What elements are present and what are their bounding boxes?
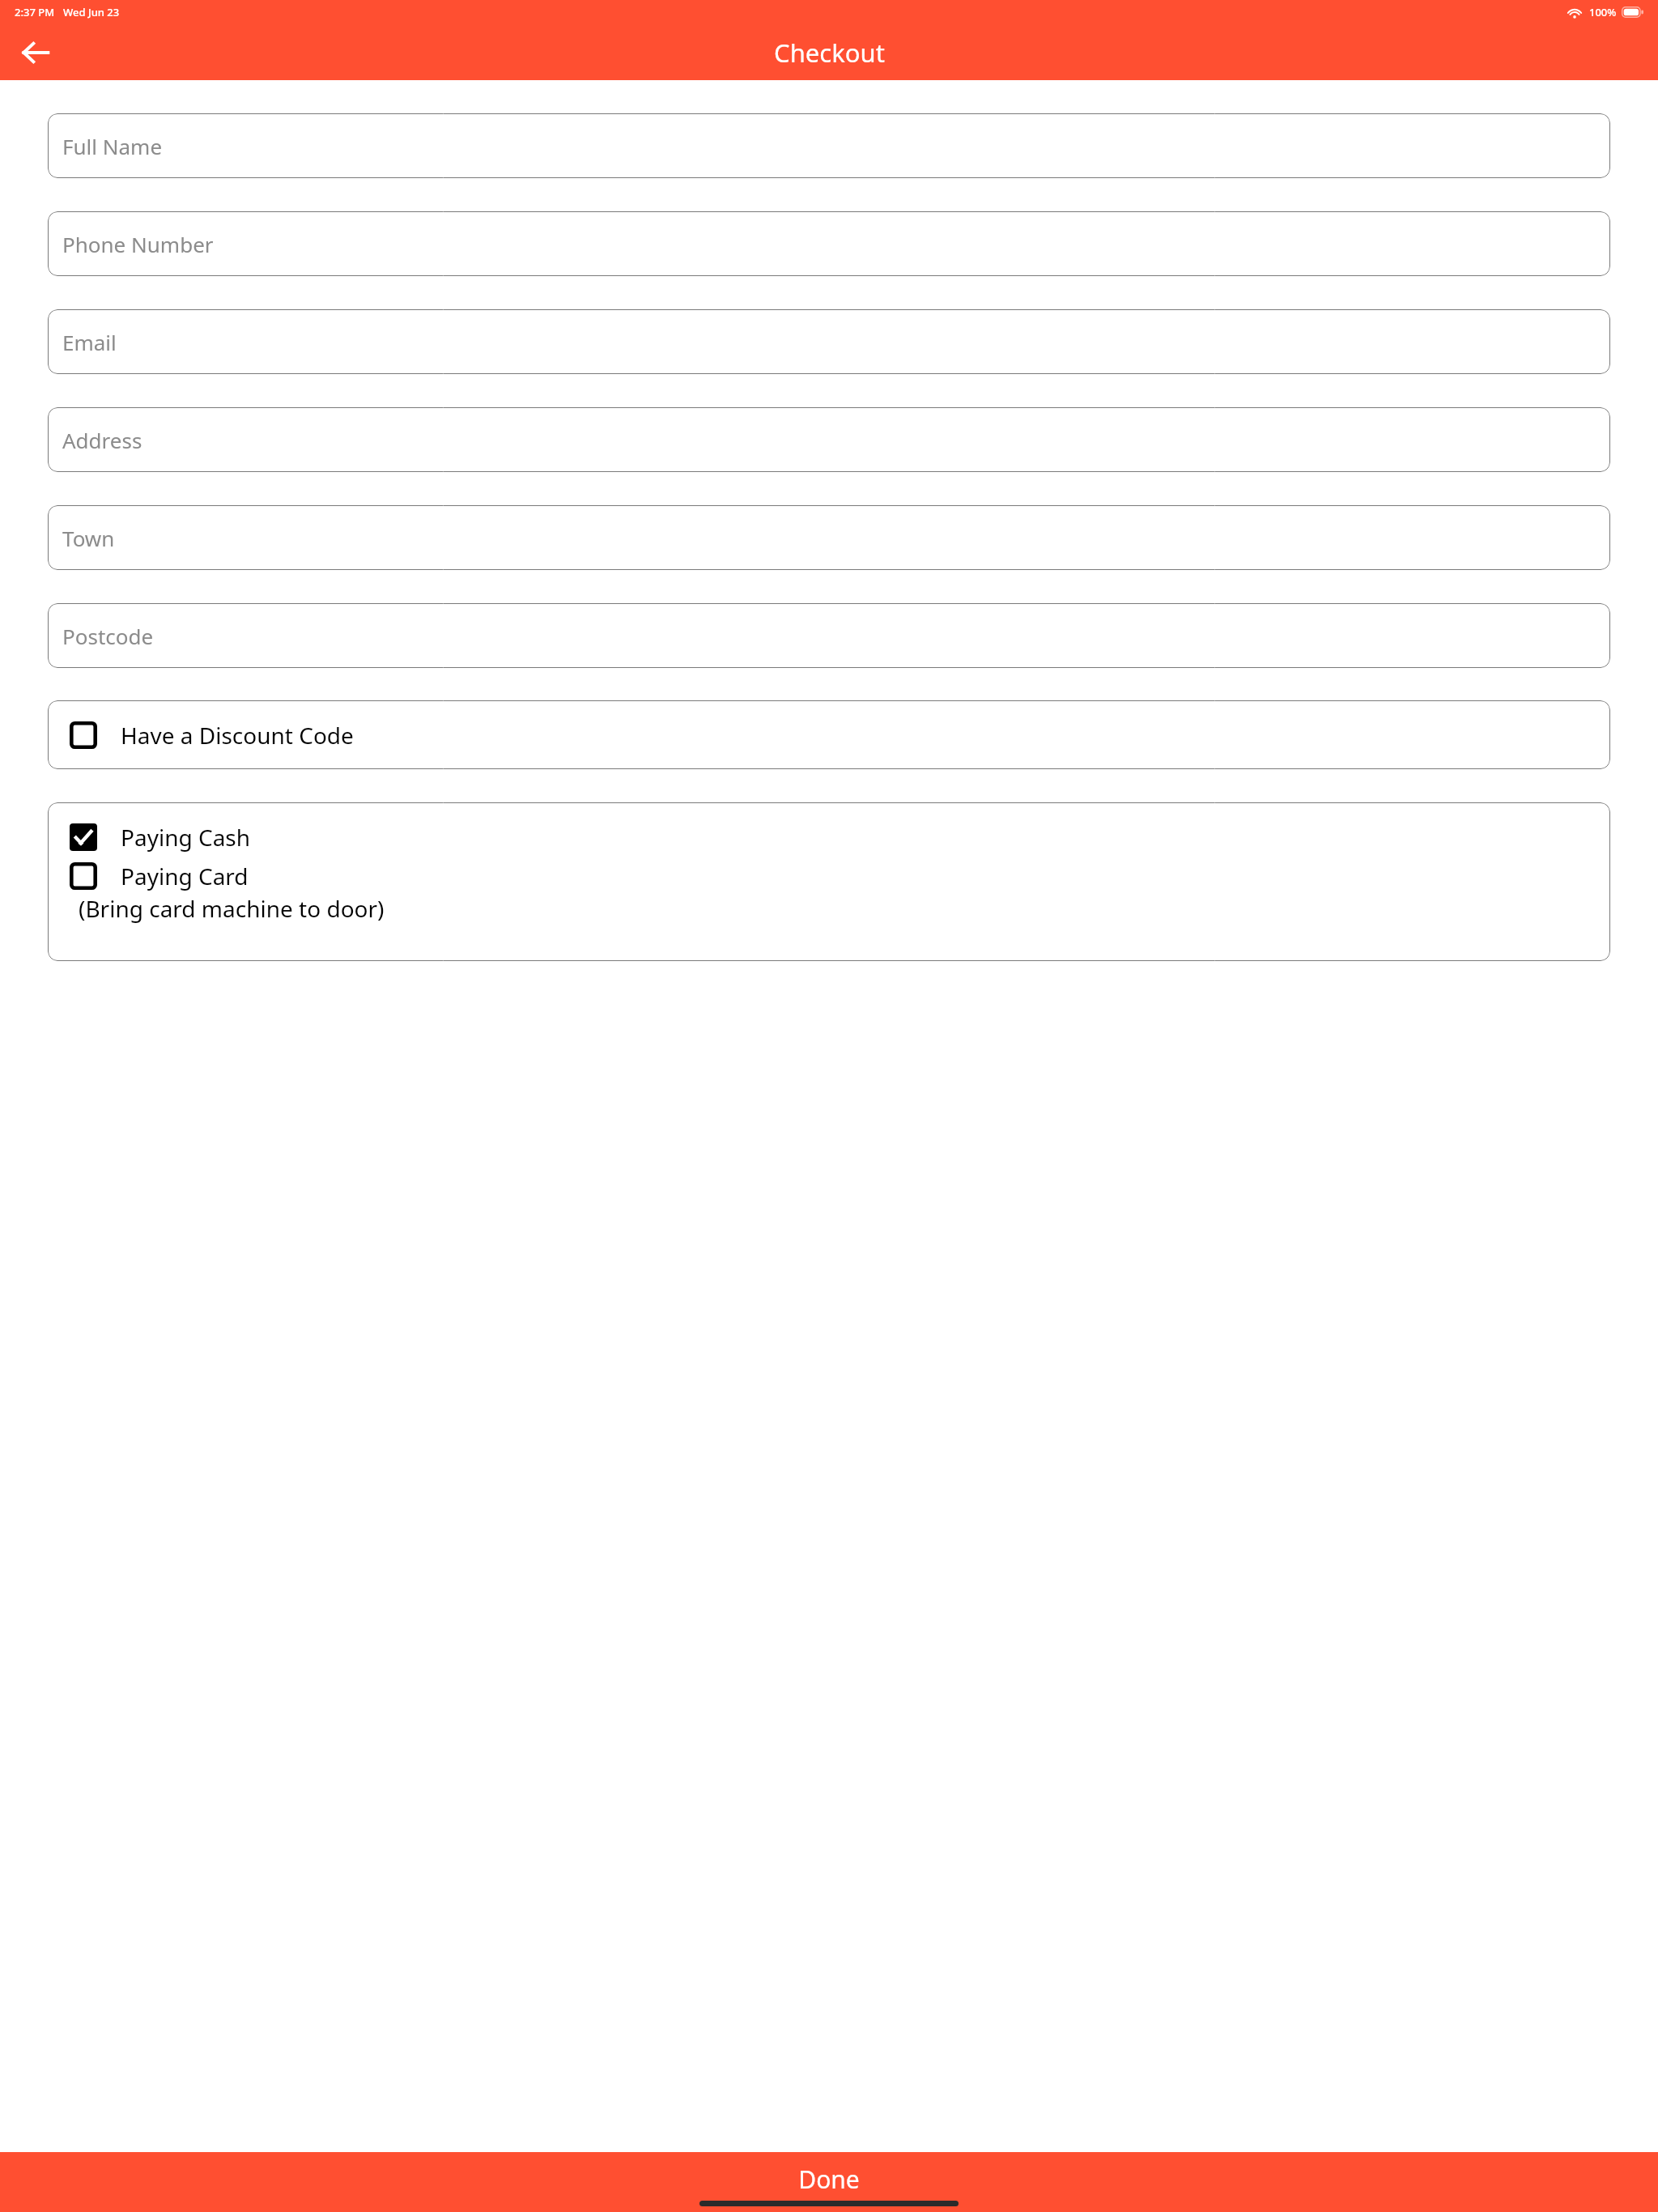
staticText: Email [62, 328, 117, 356]
button[interactable]: Address [48, 407, 1610, 472]
button[interactable]: Phone Number [48, 211, 1610, 276]
staticText: Paying Card [121, 861, 249, 891]
staticText: Phone Number [62, 230, 214, 258]
button[interactable]: Email [48, 309, 1610, 374]
staticText: Town [62, 524, 115, 552]
button[interactable]: Done [0, 2152, 1658, 2212]
button[interactable]: Checked [48, 820, 1610, 854]
staticText: (Bring card machine to door) [79, 893, 385, 924]
staticText: Full Name [62, 132, 163, 160]
other: Checked [70, 823, 97, 851]
staticText: 2:37 PM [15, 5, 55, 19]
staticText: 100% [1589, 5, 1617, 19]
staticText: Postcode [62, 622, 154, 650]
button[interactable]: Postcode [48, 603, 1610, 668]
other: Unchecked [70, 721, 97, 749]
button[interactable]: Town [48, 505, 1610, 570]
staticText: Have a Discount Code [121, 720, 354, 751]
other: Battery 100 percent [1622, 6, 1643, 18]
staticText: Checkout [774, 36, 885, 70]
other: Wi-Fi [1567, 6, 1583, 19]
other: Unchecked [70, 862, 97, 890]
staticText: Paying Cash [121, 822, 251, 853]
button[interactable]: Full Name [48, 113, 1610, 178]
button[interactable]: Back [10, 27, 62, 79]
staticText: Address [62, 426, 142, 454]
staticText: Done [798, 2163, 860, 2196]
button[interactable]: Unchecked [48, 700, 1610, 769]
button[interactable]: Unchecked [48, 861, 1610, 924]
staticText: Wed Jun 23 [63, 5, 120, 19]
